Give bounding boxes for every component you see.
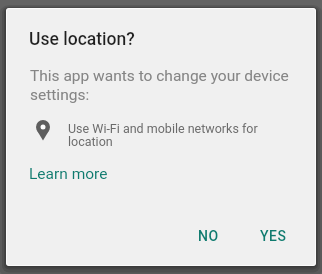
staticText: Learn more bbox=[29, 165, 108, 183]
staticText: YES bbox=[260, 228, 287, 244]
staticText: NO bbox=[198, 228, 219, 244]
button[interactable]: NO bbox=[180, 218, 236, 254]
button[interactable]: YES bbox=[245, 218, 301, 254]
button[interactable]: Learn more bbox=[24, 159, 124, 189]
staticText: This app wants to change your device set… bbox=[30, 67, 289, 104]
staticText: Use location? bbox=[29, 29, 135, 50]
staticText: Use Wi-Fi and mobile networks for locati… bbox=[68, 121, 258, 149]
